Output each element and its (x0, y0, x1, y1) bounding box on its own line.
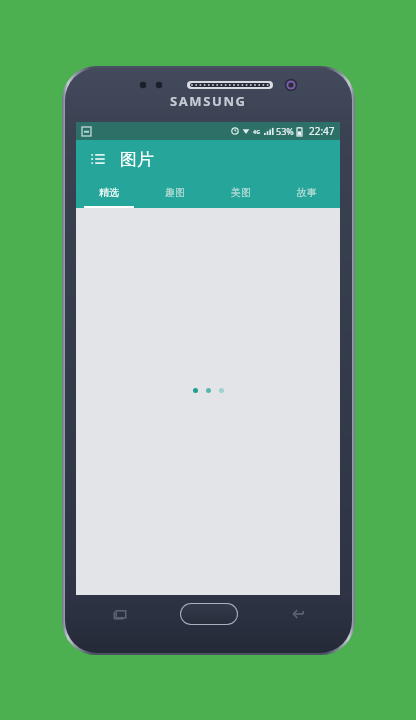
staticText: 精选 (99, 186, 119, 199)
button[interactable]: Menu (85, 146, 111, 172)
button[interactable]: Recent apps (112, 606, 128, 622)
staticText: 美图 (231, 186, 251, 199)
staticText: 趣图 (165, 186, 185, 199)
button[interactable]: 趣图 (142, 178, 208, 206)
staticText: SAMSUNG (170, 92, 247, 110)
button[interactable]: 精选 (76, 178, 142, 206)
button[interactable]: Back (289, 606, 305, 622)
button[interactable]: Home (180, 603, 238, 625)
staticText: 故事 (297, 186, 317, 199)
staticText: 4G (253, 128, 261, 135)
staticText: 图片 (120, 149, 154, 170)
staticText: 22:47 (309, 124, 335, 138)
button[interactable]: 故事 (274, 178, 340, 206)
button[interactable]: 美图 (208, 178, 274, 206)
staticText: 53% (276, 125, 294, 137)
